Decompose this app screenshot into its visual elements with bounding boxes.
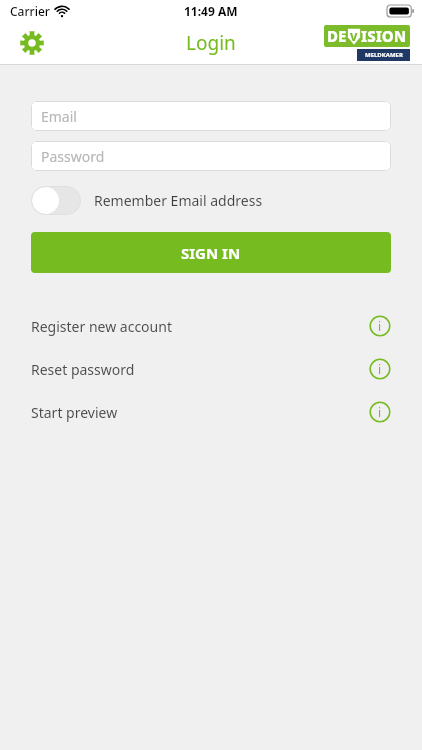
staticText: Carrier [10,3,50,19]
staticText: V [350,29,358,44]
staticText: i [378,361,382,377]
staticText: ISION [361,26,407,46]
staticText: Register new account [31,317,172,336]
staticText: 11:49 AM [184,3,238,19]
staticText: Reset password [31,360,135,379]
button[interactable]: Email [31,101,391,131]
staticText: DE [327,26,347,46]
button[interactable]: Settings [14,25,50,61]
staticText: Password [41,147,105,166]
button[interactable]: SIGN IN [31,232,391,273]
staticText: SIGN IN [181,243,241,263]
staticText: i [378,318,382,334]
button[interactable]: Remember Email address [31,185,391,215]
staticText: i [378,404,382,420]
staticText: Remember Email address [94,191,263,210]
staticText: MELDKAMER [365,51,403,59]
staticText: Login [186,30,236,56]
button[interactable]: Reset password [31,358,391,380]
button[interactable]: Start preview [31,401,391,423]
staticText: Start preview [31,403,118,422]
staticText: Email [41,107,77,126]
button[interactable]: Register new account [31,315,391,337]
button[interactable]: Password [31,141,391,171]
